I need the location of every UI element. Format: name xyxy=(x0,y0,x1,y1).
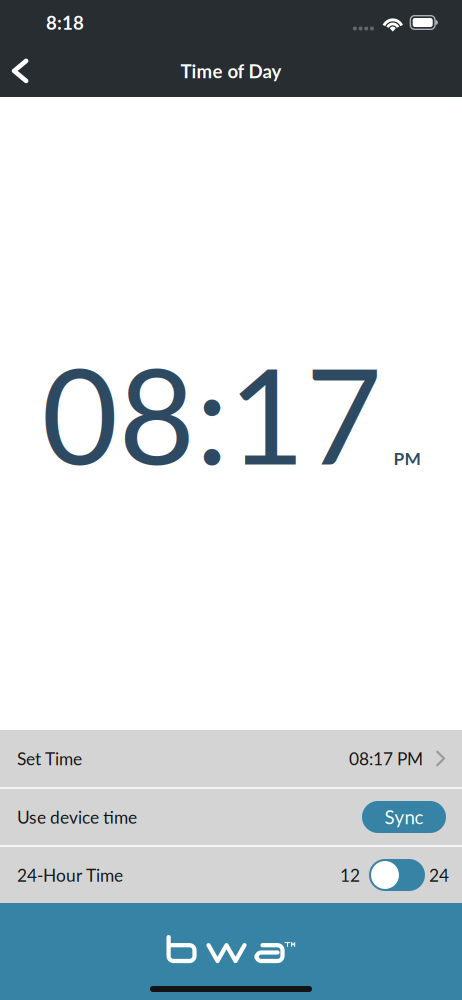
staticText: Use device time xyxy=(17,807,137,827)
staticText: Time of Day xyxy=(180,60,281,82)
staticText: 08:17 xyxy=(41,334,382,493)
staticText: Sync xyxy=(384,806,423,828)
staticText: 08:17 PM xyxy=(349,748,423,769)
staticText: Set Time xyxy=(17,748,82,769)
button[interactable]: Set Time xyxy=(0,730,462,787)
staticText: 12 xyxy=(340,865,360,885)
staticText: 24-Hour Time xyxy=(17,865,123,885)
button[interactable]: Sync xyxy=(362,801,446,833)
button[interactable]: Back xyxy=(0,45,40,97)
button[interactable]: 24-Hour Time xyxy=(369,859,425,891)
staticText: PM xyxy=(393,448,420,469)
staticText: 8:18 xyxy=(46,11,84,34)
staticText: 24 xyxy=(429,865,449,885)
